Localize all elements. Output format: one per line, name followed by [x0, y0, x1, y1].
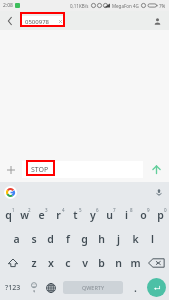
- staticText: b: [98, 256, 105, 270]
- staticText: m: [130, 256, 141, 270]
- button[interactable]: r: [50, 203, 67, 227]
- button[interactable]: .: [127, 275, 144, 300]
- button[interactable]: Emoji and comma: [25, 275, 42, 300]
- button[interactable]: o: [135, 203, 152, 227]
- staticText: g: [81, 232, 88, 246]
- button[interactable]: Add attachment: [0, 161, 22, 178]
- button[interactable]: Backspace: [144, 251, 169, 275]
- button[interactable]: l: [144, 227, 161, 251]
- staticText: n: [115, 256, 122, 270]
- staticText: r: [56, 208, 61, 222]
- button[interactable]: n: [110, 251, 127, 275]
- button[interactable]: f: [59, 227, 76, 251]
- staticText: a: [13, 232, 20, 246]
- staticText: y: [90, 208, 96, 222]
- staticText: 1: [12, 207, 15, 213]
- staticText: h: [98, 232, 105, 246]
- staticText: 6: [96, 207, 99, 213]
- staticText: f: [66, 232, 70, 246]
- staticText: o: [140, 208, 147, 222]
- button[interactable]: m: [127, 251, 144, 275]
- staticText: u: [106, 208, 113, 222]
- button[interactable]: ?123: [0, 275, 25, 300]
- button[interactable]: u: [101, 203, 118, 227]
- button[interactable]: g: [76, 227, 93, 251]
- button[interactable]: 0500978: [22, 16, 64, 27]
- button[interactable]: a: [8, 227, 25, 251]
- staticText: z: [31, 256, 37, 270]
- staticText: j: [117, 232, 120, 246]
- button[interactable]: c: [59, 251, 76, 275]
- staticText: .: [134, 281, 137, 295]
- staticText: 8: [130, 207, 133, 213]
- staticText: 5: [79, 207, 82, 213]
- staticText: e: [38, 208, 45, 222]
- staticText: STOP: [31, 165, 49, 175]
- staticText: 2:08: [3, 2, 13, 9]
- button[interactable]: Voice input: [152, 186, 165, 199]
- staticText: d: [47, 232, 54, 246]
- button[interactable]: e: [33, 203, 50, 227]
- staticText: 0,11KB/s: [70, 3, 89, 9]
- staticText: k: [132, 232, 139, 246]
- staticText: s: [31, 232, 37, 246]
- button[interactable]: QWERTY: [63, 281, 123, 294]
- button[interactable]: Send: [143, 161, 169, 178]
- button[interactable]: p: [152, 203, 169, 227]
- button[interactable]: t: [67, 203, 84, 227]
- button[interactable]: z: [25, 251, 42, 275]
- staticText: MegaFon 4G: [112, 3, 139, 9]
- button[interactable]: STOP: [22, 161, 143, 178]
- button[interactable]: Change keyboard language: [42, 275, 59, 300]
- button[interactable]: Shift: [0, 251, 25, 275]
- button[interactable]: Enter: [147, 278, 166, 297]
- staticText: 0: [164, 207, 167, 213]
- button[interactable]: y: [84, 203, 101, 227]
- button[interactable]: h: [93, 227, 110, 251]
- staticText: w: [20, 208, 29, 222]
- button[interactable]: Contacts: [149, 13, 165, 29]
- button[interactable]: s: [25, 227, 42, 251]
- button[interactable]: d: [42, 227, 59, 251]
- staticText: l: [151, 232, 154, 246]
- staticText: ?123: [5, 283, 21, 293]
- staticText: p: [157, 208, 164, 222]
- staticText: q: [5, 208, 12, 222]
- button[interactable]: q: [0, 203, 16, 227]
- staticText: i: [125, 208, 128, 222]
- staticText: 4: [62, 207, 65, 213]
- button[interactable]: k: [127, 227, 144, 251]
- staticText: 2: [28, 207, 31, 213]
- staticText: 7: [113, 207, 116, 213]
- staticText: t: [73, 208, 78, 222]
- button[interactable]: b: [93, 251, 110, 275]
- staticText: c: [65, 256, 71, 270]
- button[interactable]: Back: [2, 12, 18, 30]
- staticText: 0500978: [25, 18, 50, 26]
- staticText: v: [82, 256, 88, 270]
- staticText: 7%: [159, 3, 166, 9]
- button[interactable]: v: [76, 251, 93, 275]
- button[interactable]: j: [110, 227, 127, 251]
- staticText: QWERTY: [82, 284, 105, 291]
- button[interactable]: Google search: [4, 186, 17, 199]
- button[interactable]: w: [16, 203, 33, 227]
- button[interactable]: x: [42, 251, 59, 275]
- staticText: x: [48, 256, 54, 270]
- button[interactable]: i: [118, 203, 135, 227]
- staticText: 9: [147, 207, 150, 213]
- staticText: 3: [45, 207, 48, 213]
